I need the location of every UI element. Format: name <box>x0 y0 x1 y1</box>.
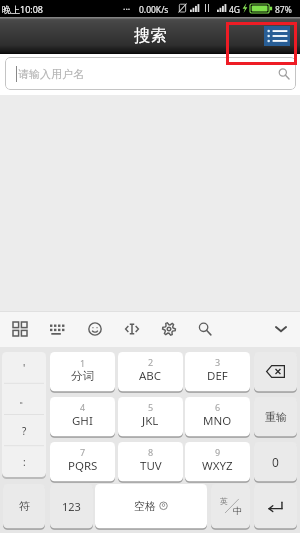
button[interactable]: 9 <box>185 442 250 483</box>
button[interactable]: ? <box>2 415 46 446</box>
button[interactable]: Move cursor <box>118 314 146 344</box>
staticText: 分词 <box>71 369 94 383</box>
staticText: 请输入用户名 <box>18 67 84 81</box>
button[interactable]: 2 <box>118 352 183 393</box>
button[interactable]: 6 <box>185 397 250 438</box>
staticText: : <box>23 455 26 469</box>
staticText: 中 <box>233 505 242 516</box>
staticText: 符 <box>19 499 30 513</box>
button[interactable]: 1 <box>50 352 115 393</box>
staticText: 6 <box>215 401 221 413</box>
button[interactable]: ' <box>2 352 46 384</box>
button[interactable]: : <box>2 446 46 477</box>
staticText: WXYZ <box>202 458 233 474</box>
staticText: 晚上10:08 <box>2 3 44 15</box>
button[interactable]: 符 <box>3 484 45 530</box>
button[interactable]: 3 <box>185 352 250 393</box>
staticText: 重输 <box>265 410 287 424</box>
staticText: 1 <box>80 357 86 369</box>
staticText: 0 <box>272 454 279 470</box>
staticText: 123 <box>62 499 81 514</box>
staticText: 搜索 <box>134 25 167 46</box>
button[interactable]: Keyboard layouts <box>6 314 34 344</box>
button[interactable]: Search <box>191 314 219 344</box>
button[interactable]: 8 <box>118 442 183 483</box>
staticText: 英 <box>220 496 228 506</box>
button[interactable]: 0 <box>254 442 297 483</box>
button[interactable]: 空格 <box>95 484 207 530</box>
button[interactable]: 请输入用户名 <box>5 57 296 90</box>
staticText: 4 <box>80 401 86 413</box>
staticText: 4G <box>229 4 241 16</box>
button[interactable]: List menu <box>264 26 290 46</box>
button[interactable]: 。 <box>2 384 46 415</box>
staticText: TUV <box>140 458 162 474</box>
staticText: ? <box>22 424 27 438</box>
staticText: ABC <box>139 368 162 384</box>
button[interactable]: Keyboard <box>43 314 71 344</box>
staticText: JKL <box>142 413 159 429</box>
button[interactable]: Hide keyboard <box>267 314 295 344</box>
staticText: 2 <box>148 356 154 368</box>
staticText: 7 <box>80 446 86 458</box>
staticText: 5 <box>148 401 154 413</box>
button[interactable]: Emoji <box>81 314 109 344</box>
staticText: 3 <box>215 356 221 368</box>
staticText: 0.00K/s <box>139 4 169 16</box>
button[interactable]: 7 <box>50 442 115 483</box>
button[interactable]: 5 <box>118 397 183 438</box>
staticText: 空格 <box>134 499 156 513</box>
staticText: GHI <box>72 413 93 429</box>
button[interactable]: Switch input language <box>211 484 250 530</box>
button[interactable]: Backspace <box>254 352 297 393</box>
button[interactable]: Settings <box>155 314 183 344</box>
button[interactable]: 重输 <box>254 397 297 438</box>
staticText: 8 <box>148 446 154 458</box>
staticText: 9 <box>215 446 221 458</box>
staticText: 87% <box>275 4 292 16</box>
staticText: DEF <box>207 368 228 384</box>
staticText: PQRS <box>68 458 98 474</box>
staticText: ' <box>23 361 26 375</box>
button[interactable]: Enter <box>254 484 297 530</box>
button[interactable]: 123 <box>50 484 93 530</box>
button[interactable]: 4 <box>50 397 115 438</box>
staticText: ... <box>123 0 131 12</box>
staticText: 。 <box>19 393 29 406</box>
staticText: MNO <box>203 413 232 429</box>
